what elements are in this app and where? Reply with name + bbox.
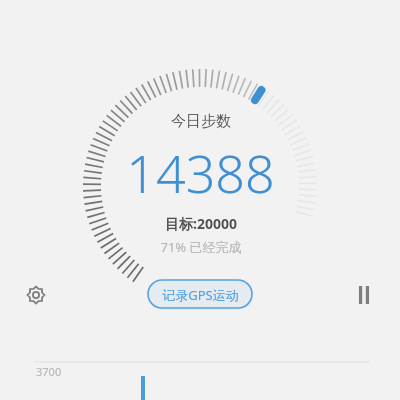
staticText: 今日步数 [171,112,231,131]
button[interactable]: Settings [16,275,56,315]
button[interactable]: Pause [344,275,384,315]
button[interactable]: 记录GPS运动 [148,280,253,310]
staticText: 3700 [36,364,62,379]
staticText: 71% 已经完成 [160,238,242,256]
staticText: 记录GPS运动 [162,286,239,304]
staticText: 目标:20000 [165,214,237,233]
staticText: 14388 [126,137,275,208]
